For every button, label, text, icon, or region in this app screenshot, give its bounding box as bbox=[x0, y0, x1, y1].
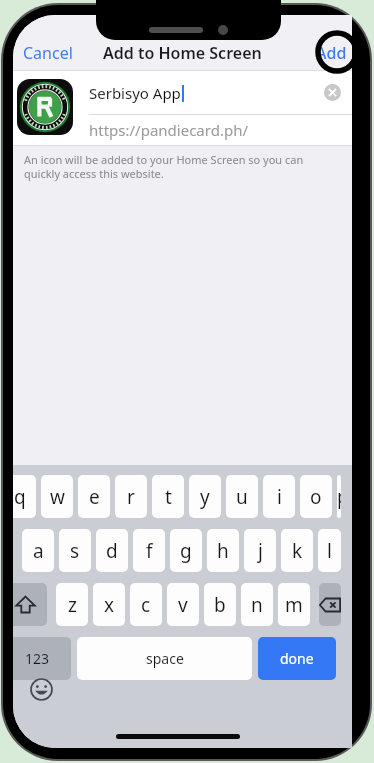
button[interactable]: q bbox=[13, 475, 36, 518]
button[interactable]: y bbox=[189, 475, 221, 518]
staticText: w bbox=[50, 484, 65, 510]
staticText: 123 bbox=[25, 649, 50, 668]
button[interactable]: Shift bbox=[13, 583, 47, 626]
staticText: done bbox=[280, 649, 314, 668]
button[interactable]: Clear name bbox=[324, 84, 341, 101]
button[interactable]: u bbox=[226, 475, 258, 518]
button[interactable]: l bbox=[318, 529, 341, 572]
staticText: t bbox=[165, 484, 172, 510]
staticText: g bbox=[180, 538, 192, 564]
button[interactable]: s bbox=[59, 529, 91, 572]
staticText: f bbox=[146, 538, 153, 564]
staticText: h bbox=[217, 538, 229, 564]
staticText: c bbox=[141, 592, 151, 618]
button[interactable]: 123 bbox=[13, 637, 71, 680]
staticText: l bbox=[327, 538, 332, 564]
staticText: Cancel bbox=[23, 42, 73, 64]
button[interactable]: k bbox=[281, 529, 313, 572]
staticText: y bbox=[200, 484, 210, 510]
button[interactable]: t bbox=[152, 475, 184, 518]
button[interactable]: space bbox=[77, 637, 252, 680]
staticText: Add to Home Screen bbox=[103, 42, 262, 64]
staticText: Serbisyo App bbox=[89, 83, 181, 103]
button[interactable]: i bbox=[263, 475, 295, 518]
staticText: d bbox=[106, 538, 118, 564]
staticText: https://pandiecard.ph/ bbox=[89, 120, 248, 140]
button[interactable]: f bbox=[133, 529, 165, 572]
button[interactable]: a bbox=[22, 529, 54, 572]
button[interactable]: w bbox=[41, 475, 73, 518]
staticText: An icon will be added to your Home Scree… bbox=[24, 152, 304, 181]
button[interactable]: Emoji keyboard bbox=[30, 678, 53, 701]
button[interactable]: d bbox=[96, 529, 128, 572]
button[interactable]: Backspace bbox=[319, 583, 341, 626]
staticText: x bbox=[104, 592, 115, 618]
staticText: r bbox=[127, 484, 135, 510]
button[interactable]: n bbox=[241, 583, 273, 626]
button[interactable]: Serbisyo App bbox=[89, 71, 352, 114]
staticText: u bbox=[236, 484, 248, 510]
button[interactable]: j bbox=[244, 529, 276, 572]
button[interactable]: e bbox=[78, 475, 110, 518]
button[interactable]: b bbox=[204, 583, 236, 626]
button[interactable]: Add bbox=[306, 37, 352, 69]
staticText: k bbox=[292, 538, 303, 564]
staticText: i bbox=[277, 484, 282, 510]
staticText: v bbox=[178, 592, 188, 618]
button[interactable]: p bbox=[337, 475, 341, 518]
staticText: s bbox=[70, 538, 80, 564]
staticText: q bbox=[14, 484, 26, 510]
button[interactable]: c bbox=[130, 583, 162, 626]
button[interactable]: x bbox=[93, 583, 125, 626]
staticText: o bbox=[310, 484, 322, 510]
staticText: z bbox=[68, 592, 77, 618]
button[interactable]: done bbox=[258, 637, 336, 680]
staticText: a bbox=[33, 538, 44, 564]
staticText: space bbox=[146, 649, 184, 668]
staticText: j bbox=[258, 538, 263, 564]
button[interactable]: g bbox=[170, 529, 202, 572]
button[interactable]: r bbox=[115, 475, 147, 518]
button[interactable]: https://pandiecard.ph/ bbox=[89, 115, 352, 145]
staticText: m bbox=[285, 592, 303, 618]
staticText: e bbox=[89, 484, 100, 510]
button[interactable]: o bbox=[300, 475, 332, 518]
staticText: n bbox=[251, 592, 263, 618]
button[interactable]: Cancel bbox=[13, 37, 83, 69]
button[interactable]: z bbox=[56, 583, 88, 626]
staticText: b bbox=[214, 592, 226, 618]
button[interactable]: v bbox=[167, 583, 199, 626]
staticText: Add bbox=[316, 42, 347, 64]
button[interactable]: m bbox=[278, 583, 310, 626]
button[interactable]: h bbox=[207, 529, 239, 572]
staticText: p bbox=[337, 484, 341, 510]
